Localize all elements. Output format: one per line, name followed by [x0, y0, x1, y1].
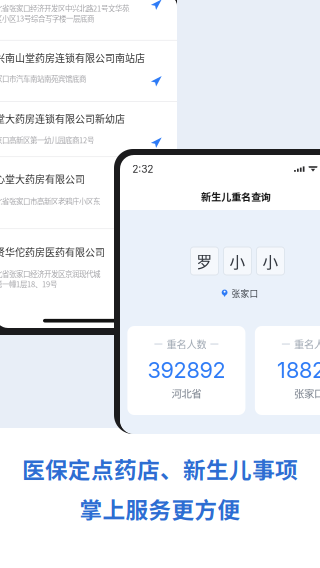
- button[interactable]: 张家口: [222, 287, 258, 299]
- staticText: 河北省: [171, 385, 201, 401]
- button[interactable]: 罗: [190, 247, 218, 275]
- staticText: 北省张家口经济开发区京润现代城: [0, 268, 100, 279]
- staticText: 医保定点药店、新生儿事项: [22, 452, 298, 485]
- staticText: 兴南山堂药房连锁有限公司南站店: [0, 50, 145, 65]
- staticText: 新生儿重名查询: [201, 189, 271, 204]
- button[interactable]: 心堂大药房有限公司: [0, 157, 177, 229]
- staticText: 小: [262, 250, 278, 272]
- staticText: 张家口: [231, 287, 258, 299]
- button[interactable]: 市宏兴南山堂药房连锁有限公司文华苑店: [0, 0, 177, 41]
- staticText: 重名人数: [166, 337, 206, 351]
- staticText: 家口市汽车南站南苑宾馆底商: [0, 73, 86, 84]
- staticText: 小: [229, 250, 245, 272]
- staticText: 392892: [147, 357, 225, 383]
- button[interactable]: 贤华佗药房医药有限公司: [0, 229, 177, 301]
- button[interactable]: 兴南山堂药房连锁有限公司南站店: [0, 41, 177, 102]
- button[interactable]: 小: [256, 247, 284, 275]
- staticText: 188293: [277, 357, 320, 383]
- staticText: 贤华佗药房医药有限公司: [0, 245, 105, 259]
- staticText: 2:32: [132, 163, 153, 175]
- staticText: 区小区13号综合写字楼一层底商: [0, 13, 94, 24]
- staticText: 重名人数: [294, 337, 320, 351]
- button[interactable]: 堂大药房连锁有限公司新幼店: [0, 102, 177, 157]
- staticText: 心堂大药房有限公司: [0, 172, 85, 186]
- staticText: 堂大药房连锁有限公司新幼店: [0, 111, 125, 126]
- staticText: 张家口市: [294, 385, 320, 401]
- staticText: 京口高新区第一幼儿园底商12号: [0, 134, 94, 145]
- staticText: 掌上服务更方便: [79, 492, 240, 525]
- staticText: 罗: [196, 250, 212, 272]
- staticText: 第一幢1层18、19号: [0, 279, 57, 289]
- staticText: 北省张家口市高新区老鸦庄小区东: [0, 196, 100, 206]
- button[interactable]: 小: [223, 247, 251, 275]
- staticText: 北省张家口经济开发区中兴北路21号文华苑: [0, 3, 129, 13]
